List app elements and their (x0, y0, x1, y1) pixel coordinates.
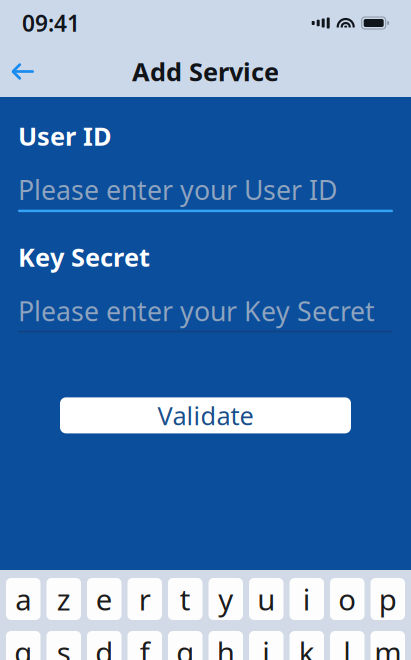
button[interactable]: Validate (60, 397, 351, 433)
button[interactable]: Back (0, 49, 46, 93)
button[interactable]: t (168, 578, 202, 620)
staticText: z (57, 579, 71, 618)
staticText: s (57, 632, 71, 660)
button[interactable]: y (208, 578, 243, 620)
button[interactable]: s (46, 631, 81, 660)
staticText: i (303, 579, 311, 618)
button[interactable]: e (87, 578, 121, 620)
staticText: 09:41 (22, 8, 80, 38)
staticText: User ID (18, 119, 112, 153)
button[interactable]: q (6, 631, 40, 660)
button[interactable]: i (289, 578, 324, 620)
staticText: k (299, 632, 315, 660)
staticText: a (15, 579, 31, 618)
button[interactable]: a (6, 578, 40, 620)
staticText: t (180, 579, 191, 618)
staticText: Please enter your Key Secret (18, 293, 375, 328)
staticText: p (379, 579, 397, 618)
staticText: f (140, 632, 150, 660)
staticText: Add Service (132, 55, 279, 88)
staticText: e (96, 579, 113, 618)
staticText: j (262, 632, 270, 660)
staticText: Validate (157, 399, 253, 432)
button[interactable]: u (249, 578, 283, 620)
button[interactable]: l (330, 631, 364, 660)
staticText: y (218, 579, 233, 618)
staticText: Please enter your User ID (18, 172, 337, 207)
staticText: q (14, 632, 32, 660)
button[interactable]: p (370, 578, 405, 620)
staticText: Key Secret (18, 240, 150, 274)
button[interactable]: g (168, 631, 202, 660)
staticText: g (176, 632, 194, 660)
button[interactable]: z (46, 578, 81, 620)
button[interactable]: f (127, 631, 162, 660)
button[interactable]: r (127, 578, 162, 620)
staticText: l (343, 632, 351, 660)
button[interactable]: o (330, 578, 364, 620)
button[interactable]: m (370, 631, 405, 660)
staticText: d (95, 632, 113, 660)
staticText: r (139, 579, 151, 618)
staticText: h (217, 632, 235, 660)
button[interactable]: d (87, 631, 121, 660)
staticText: u (257, 579, 275, 618)
staticText: m (374, 632, 401, 660)
button[interactable]: k (289, 631, 324, 660)
staticText: o (338, 579, 356, 618)
button[interactable]: j (249, 631, 283, 660)
button[interactable]: h (208, 631, 243, 660)
